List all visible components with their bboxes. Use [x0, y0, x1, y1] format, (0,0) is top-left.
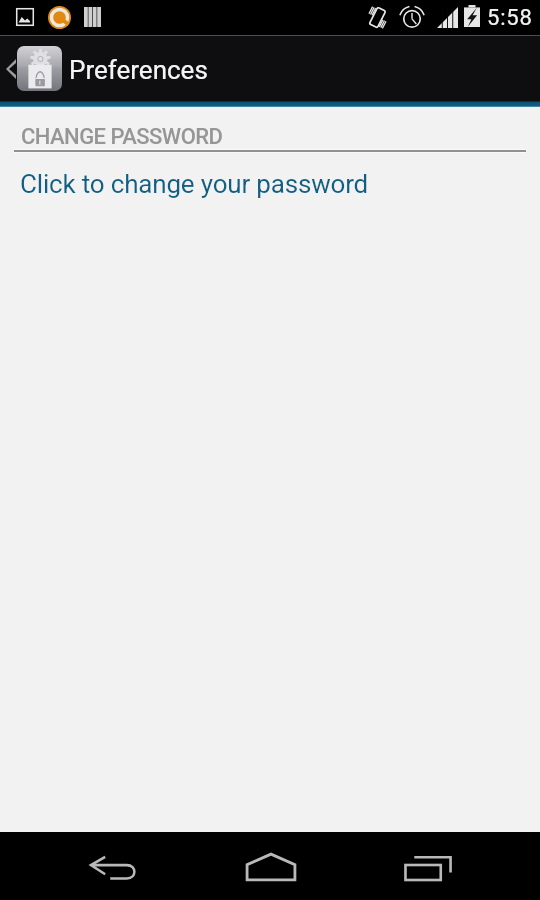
button[interactable]: Recent apps: [376, 832, 481, 900]
staticText: Click to change your password: [20, 169, 369, 199]
staticText: Preferences: [69, 55, 208, 85]
staticText: 5:58: [487, 5, 533, 31]
button[interactable]: Home: [218, 832, 323, 900]
button[interactable]: Click to change your password: [0, 153, 540, 215]
staticText: CHANGE PASSWORD: [21, 124, 223, 150]
button[interactable]: Back: [60, 832, 165, 900]
button[interactable]: Navigate up: [0, 36, 70, 102]
